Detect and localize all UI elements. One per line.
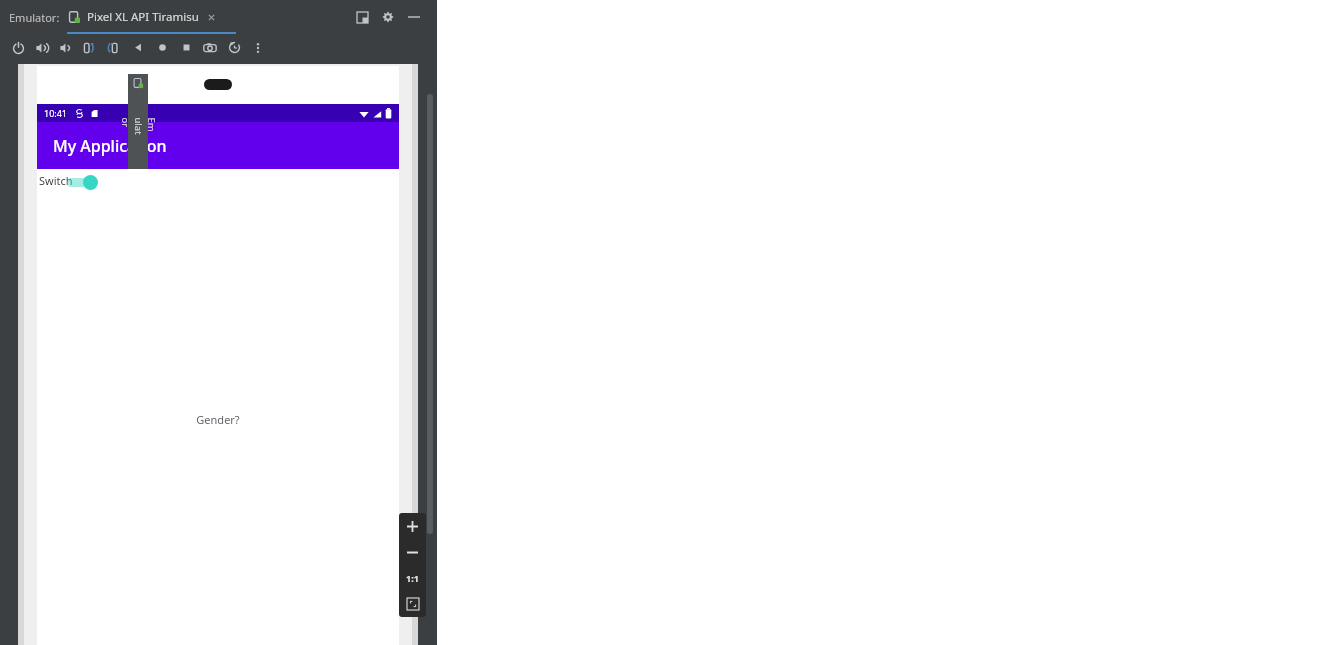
button[interactable]: Screenshot xyxy=(198,35,222,60)
button[interactable]: Minimize tool window xyxy=(351,6,373,28)
button[interactable]: More xyxy=(246,35,270,60)
button[interactable]: Rotate left xyxy=(78,35,102,60)
button[interactable]: Switch xyxy=(39,173,73,188)
button[interactable]: Gender? xyxy=(196,412,240,427)
button[interactable]: Pixel XL API Tiramisu xyxy=(68,0,217,34)
staticText: Pixel XL API Tiramisu xyxy=(87,9,199,25)
button[interactable]: Settings xyxy=(377,6,399,28)
staticText: 1:1 xyxy=(406,572,419,584)
button[interactable]: Back to previous xyxy=(222,35,246,60)
staticText: Emulator xyxy=(118,117,157,137)
button[interactable]: Zoom out xyxy=(399,539,426,565)
button[interactable]: Back xyxy=(126,35,150,60)
button[interactable]: Zoom in xyxy=(399,513,426,539)
button[interactable]: Hide xyxy=(403,6,425,28)
button[interactable]: Volume up xyxy=(30,35,54,60)
button[interactable]: Overview xyxy=(174,35,198,60)
button[interactable]: Power xyxy=(6,35,30,60)
staticText: My Application xyxy=(53,135,167,157)
button[interactable]: Toggle switch xyxy=(59,173,103,191)
button[interactable]: Fit to window xyxy=(399,591,426,617)
button[interactable]: Close tab xyxy=(206,12,217,23)
staticText: Emulator: xyxy=(9,10,60,25)
button[interactable]: Rotate right xyxy=(102,35,126,60)
button[interactable]: Volume down xyxy=(54,35,78,60)
button[interactable]: 1:1 xyxy=(399,565,426,591)
staticText: 10:41 xyxy=(44,107,68,119)
button[interactable]: Home xyxy=(150,35,174,60)
